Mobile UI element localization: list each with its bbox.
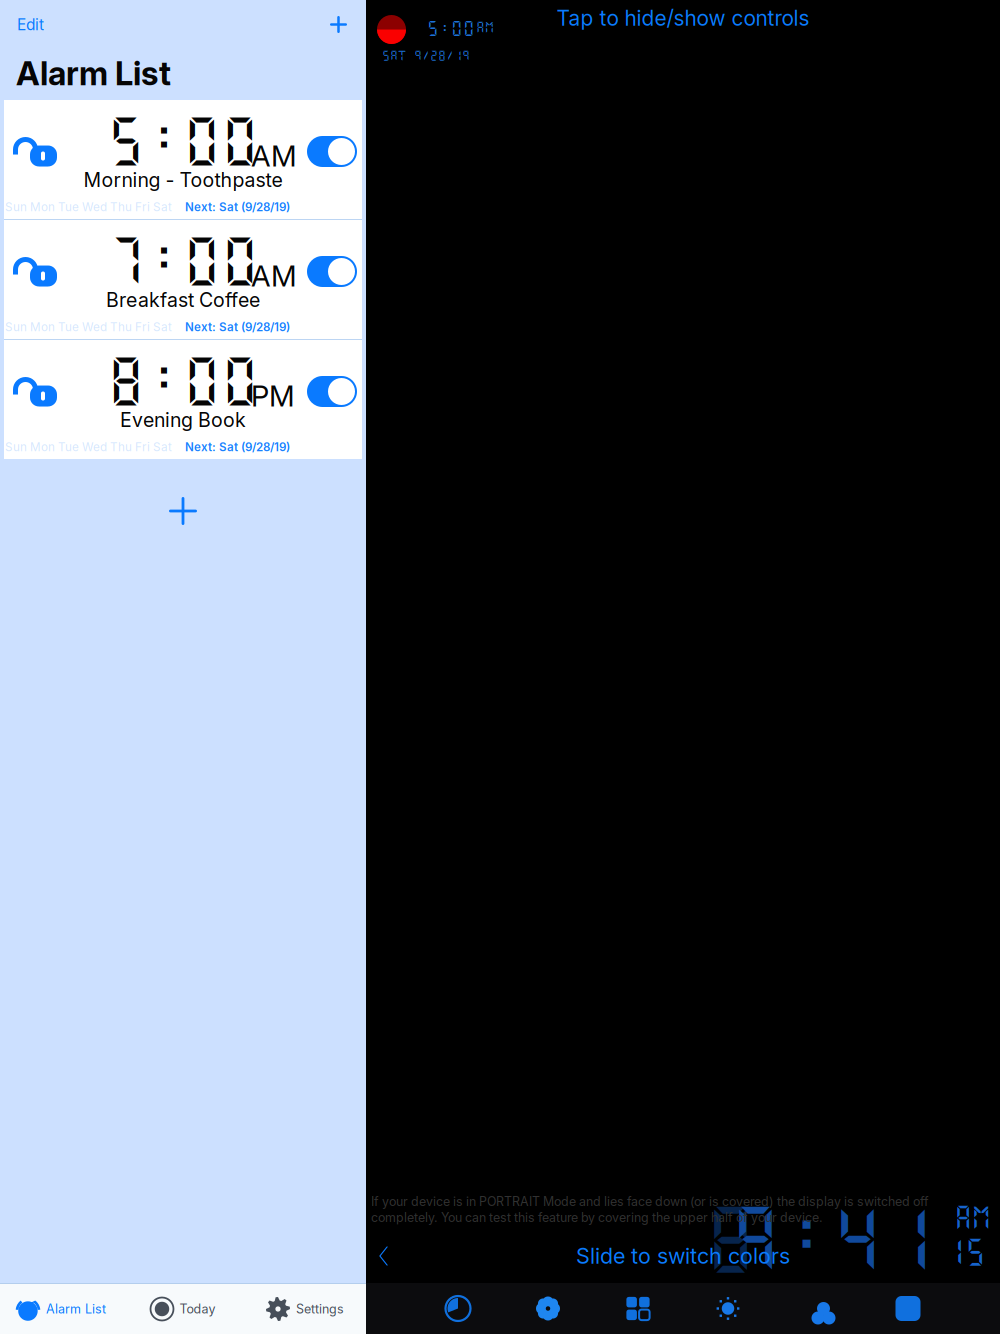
staticText: Slide to switch colors [576,1243,790,1269]
button[interactable]: Clock face [413,1283,503,1334]
button[interactable]: Background [863,1283,953,1334]
staticText: Next: Sat (9/28/19) [185,320,290,334]
button[interactable]: Add alarm [323,9,354,40]
staticText: completely. You can test this feature by… [371,1210,823,1225]
button[interactable]: Tap to hide/show controls [366,0,1000,36]
staticText: Breakfast Coffee [106,288,260,312]
staticText: 7:00 [107,229,259,291]
button[interactable]: Today [122,1284,244,1334]
button[interactable]: Alarm List [0,1284,122,1334]
staticText: Tap to hide/show controls [556,5,809,31]
staticText: AM [251,258,297,294]
staticText: 5:00 [107,109,259,171]
button[interactable]: 7:00 [4,220,362,339]
staticText: Next: Sat (9/28/19) [185,440,290,454]
staticText: Today [179,1301,215,1316]
button[interactable]: Brightness [683,1283,773,1334]
staticText: Next: Sat (9/28/19) [185,200,290,214]
button[interactable]: Themes [503,1283,593,1334]
staticText: AM [476,20,494,34]
staticText: 8 [705,1196,756,1279]
staticText: 9:41 [730,1196,934,1279]
button[interactable]: 8:00 [4,340,362,459]
button[interactable]: Layout [593,1283,683,1334]
button[interactable]: Edit [12,9,49,40]
staticText: Evening Book [120,408,246,432]
staticText: PM [251,378,295,414]
staticText: Settings [296,1301,344,1316]
staticText: SAT 9/28/19 [382,49,470,62]
staticText: Sun Mon Tue Wed Thu Fri Sat [5,200,172,214]
button[interactable]: Previous colour [371,1240,396,1272]
staticText: AM [954,1202,990,1232]
staticText: If your device is in PORTRAIT Mode and l… [371,1194,929,1209]
staticText: Morning - Toothpaste [83,168,282,192]
staticText: Sun Mon Tue Wed Thu Fri Sat [5,440,172,454]
staticText: 15 [944,1234,986,1268]
staticText: Alarm List [16,54,171,93]
button[interactable]: Settings [244,1284,366,1334]
staticText: 5:00 [427,19,475,38]
staticText: 8:00 [107,349,259,411]
button[interactable]: 5:00 [4,100,362,219]
staticText: Edit [17,15,44,34]
staticText: Sun Mon Tue Wed Thu Fri Sat [5,320,172,334]
staticText: Alarm List [46,1301,106,1316]
staticText: AM [251,138,297,174]
button[interactable]: Colours [773,1283,863,1334]
button[interactable]: New alarm [155,483,211,539]
